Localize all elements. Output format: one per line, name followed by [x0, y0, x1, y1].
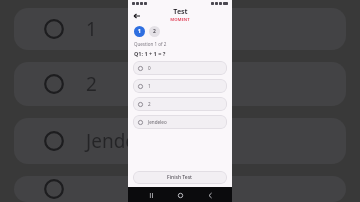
button[interactable]: Back [131, 10, 142, 21]
staticText: 0 [148, 65, 151, 71]
button[interactable]: 1 [134, 26, 145, 37]
staticText: Jendeleo [148, 119, 167, 125]
button[interactable]: Finish Test [133, 171, 227, 184]
staticText: 1 [138, 28, 141, 35]
button[interactable]: 0 [133, 61, 227, 75]
staticText: 1 [86, 16, 97, 42]
staticText: Jendeleo [86, 128, 164, 154]
staticText: 1 [148, 83, 151, 89]
staticText: MOMENT [170, 17, 190, 23]
staticText: 2 [153, 28, 156, 35]
staticText: Q1: 1 + 1 = ? [134, 50, 166, 57]
staticText: Test [173, 7, 188, 17]
button[interactable]: Recents [144, 188, 158, 202]
staticText: Finish Test [167, 174, 193, 181]
button[interactable]: 2 [149, 26, 160, 37]
button[interactable]: 2 [133, 97, 227, 111]
button[interactable]: Back [203, 188, 217, 202]
button[interactable]: Jendeleo [133, 115, 227, 129]
button[interactable]: Home [173, 188, 187, 202]
staticText: 2 [148, 101, 151, 107]
button[interactable]: 1 [133, 79, 227, 93]
staticText: Question 1 of 2 [134, 41, 167, 47]
staticText: 2 [86, 71, 97, 97]
